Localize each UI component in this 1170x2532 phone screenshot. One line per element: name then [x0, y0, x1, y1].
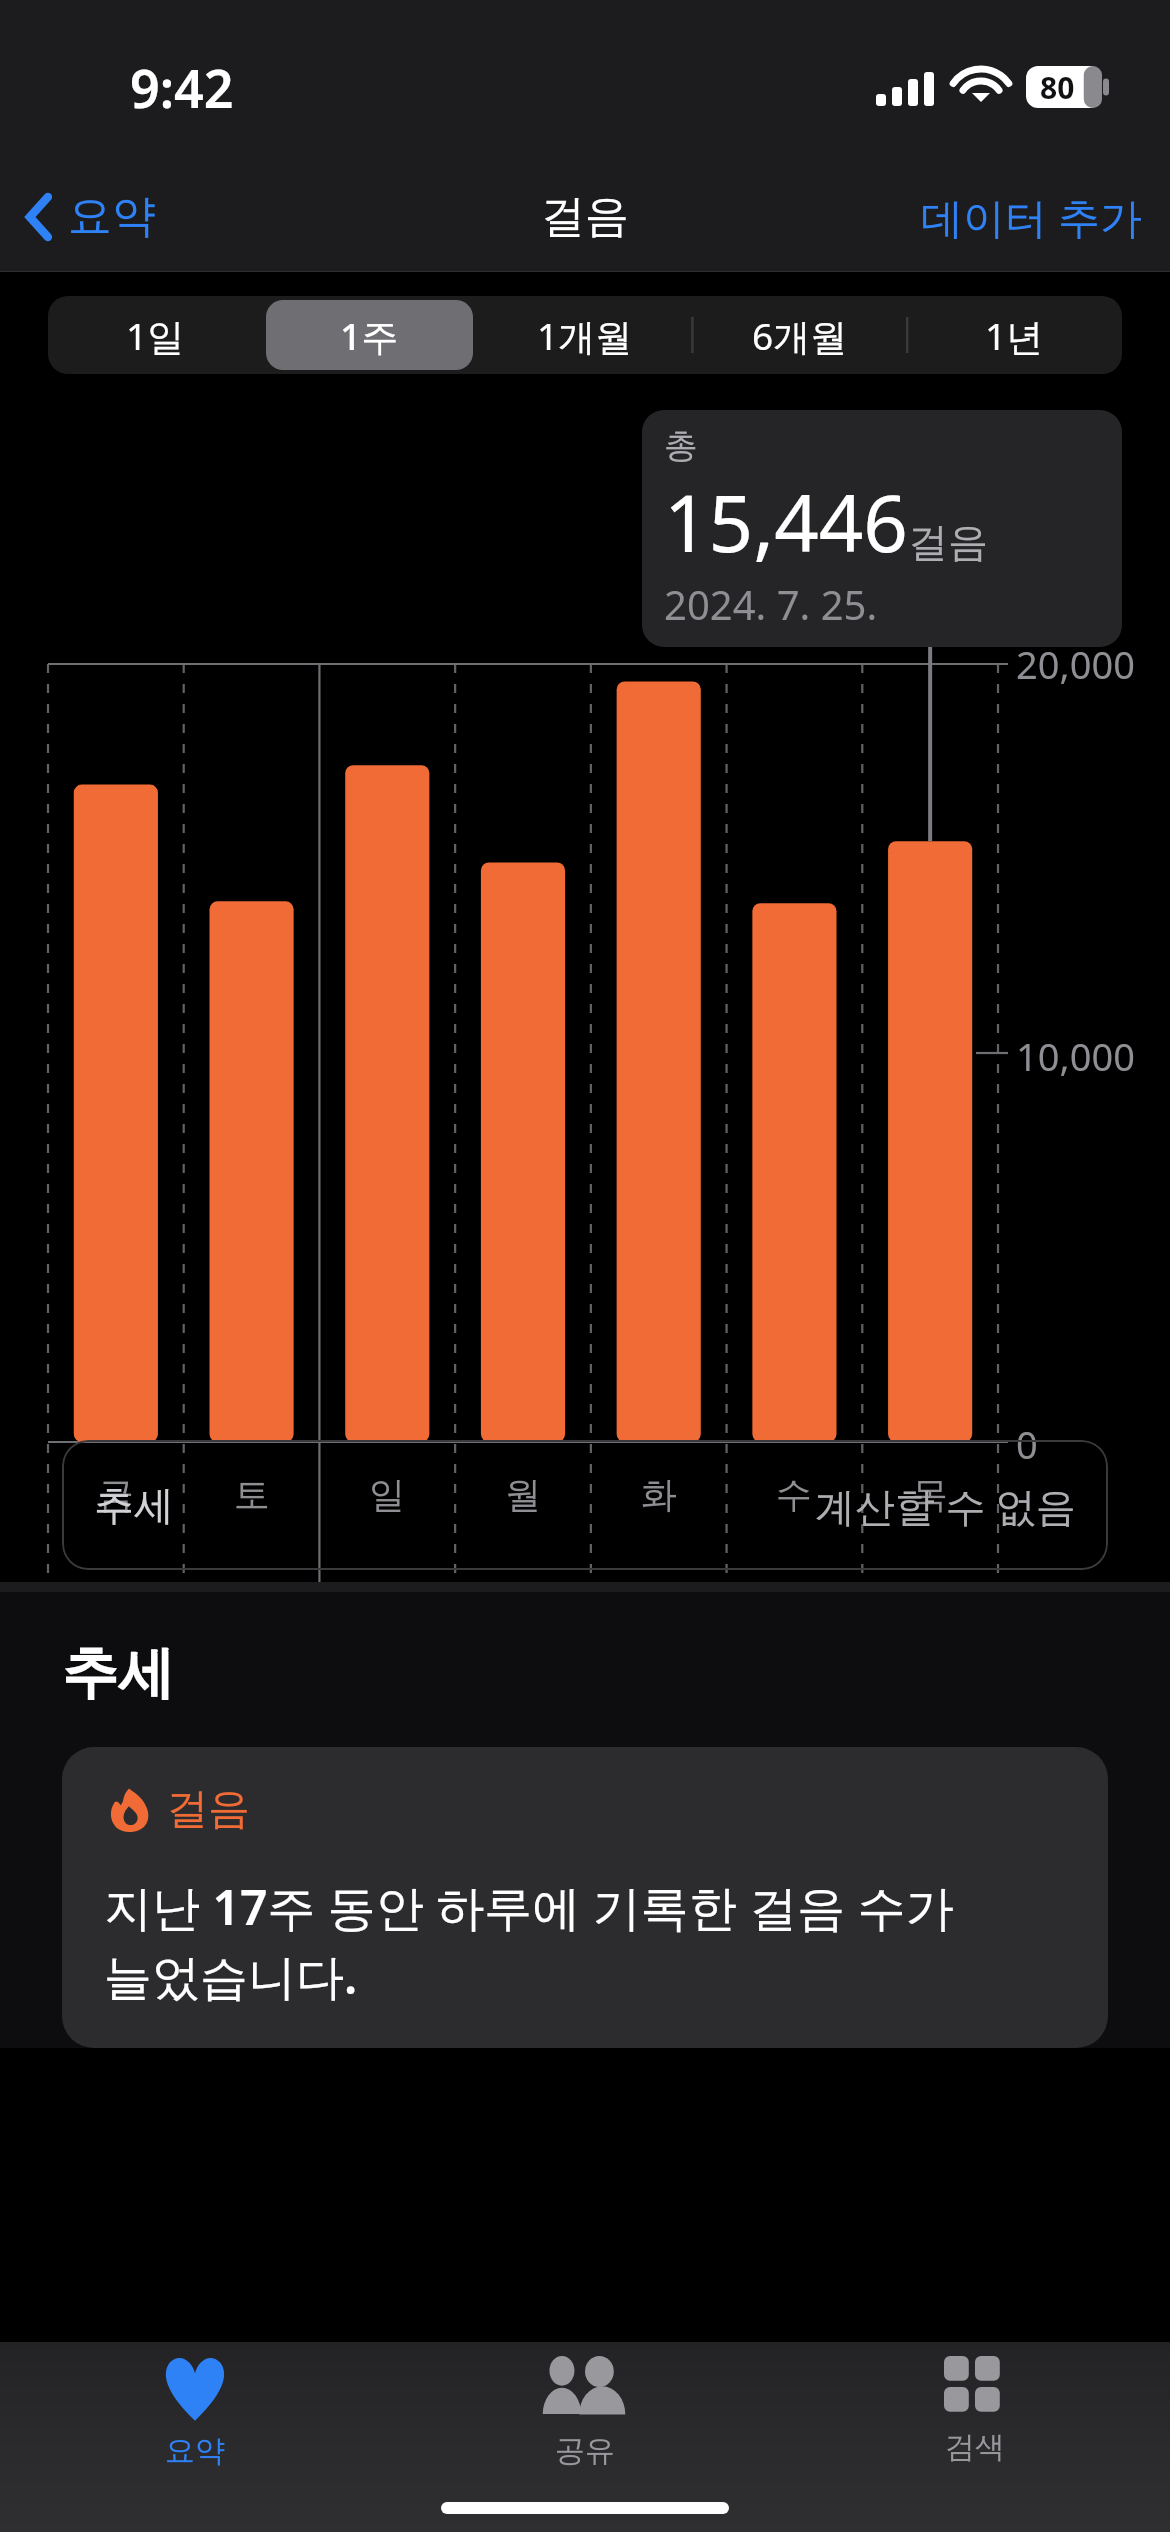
staticText: 지난 17주 동안 하루에 기록한 걸음 수가 늘었습니다. [104, 1874, 954, 2008]
button[interactable]: 데이터 추가 [893, 178, 1170, 255]
staticText: 2024. 7. 25. [664, 577, 878, 631]
staticText: 10,000 [1016, 1030, 1135, 1082]
staticText: 걸음 [166, 1783, 250, 1836]
staticText: 일 [369, 1472, 405, 1517]
button[interactable]: 요약 [0, 181, 172, 252]
button[interactable]: 1일 [52, 300, 258, 370]
button[interactable]: 공유 [390, 2342, 780, 2472]
staticText: 걸음 [541, 189, 629, 244]
other: 검색 [944, 2356, 1006, 2418]
staticText: 검색 [945, 2428, 1005, 2466]
staticText: 추세 [94, 1480, 174, 1530]
staticText: 걸음 [908, 517, 988, 567]
staticText: 1주 [340, 310, 399, 361]
staticText: 공유 [555, 2432, 615, 2470]
button[interactable]: 추세 [62, 1440, 1108, 1570]
other: 요약 [158, 2356, 232, 2422]
button[interactable]: 6개월 [696, 300, 903, 370]
staticText: 15,446 [664, 469, 908, 575]
staticText: 6개월 [752, 310, 848, 361]
staticText: 목 [912, 1472, 948, 1517]
staticText: 계산할 수 없음 [815, 1478, 1076, 1533]
staticText: 80 [1040, 67, 1075, 108]
staticText: 1개월 [537, 310, 633, 361]
other: 공유 [537, 2356, 633, 2422]
staticText: 20,000 [1016, 638, 1135, 690]
staticText: 추세 [62, 1638, 174, 1709]
staticText: 총 [664, 424, 698, 467]
button[interactable]: 검색 [780, 2342, 1170, 2472]
staticText: 9:42 [130, 52, 234, 123]
staticText: 1일 [126, 310, 185, 361]
staticText: 수 [776, 1472, 812, 1517]
staticText: 요약 [68, 189, 156, 244]
staticText: 데이터 추가 [921, 188, 1142, 245]
staticText: 금 [98, 1472, 134, 1517]
button[interactable]: 걸음 [62, 1747, 1108, 2048]
staticText: 1년 [985, 310, 1044, 361]
staticText: 화 [641, 1472, 677, 1517]
button[interactable]: 1개월 [481, 300, 688, 370]
button[interactable]: 요약 [0, 2342, 390, 2472]
staticText: 요약 [165, 2432, 225, 2470]
staticText: 0 [1016, 1418, 1038, 1470]
button[interactable]: 1주 [266, 300, 473, 370]
staticText: 월 [505, 1472, 541, 1517]
button[interactable]: 1년 [911, 300, 1118, 370]
staticText: 토 [234, 1472, 270, 1517]
